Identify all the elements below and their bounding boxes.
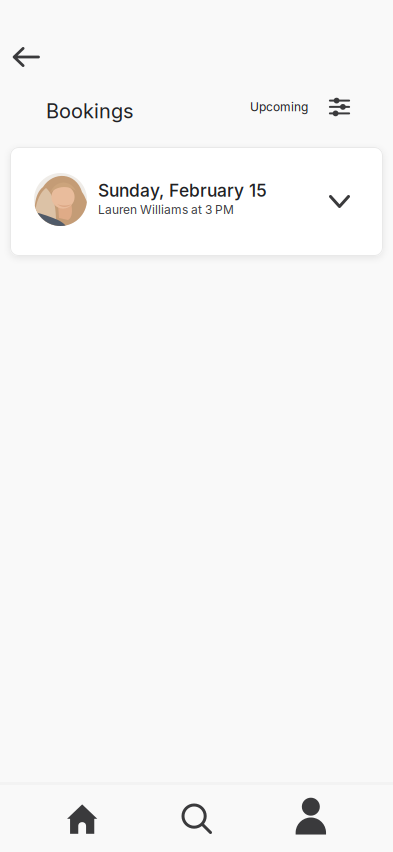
button[interactable]: Upcoming <box>250 96 308 126</box>
staticText: Sunday, February 15 <box>98 180 267 201</box>
staticText: Upcoming <box>250 100 308 114</box>
button[interactable]: Sunday, February 15 <box>10 147 383 256</box>
button[interactable]: Filter <box>308 94 350 128</box>
staticText: Lauren Williams at 3 PM <box>98 203 234 217</box>
button[interactable]: Home <box>25 782 139 852</box>
button[interactable]: Search <box>139 782 254 852</box>
staticText: Bookings <box>46 99 133 123</box>
button[interactable]: Back <box>6 37 46 77</box>
button[interactable]: Profile <box>254 782 368 852</box>
